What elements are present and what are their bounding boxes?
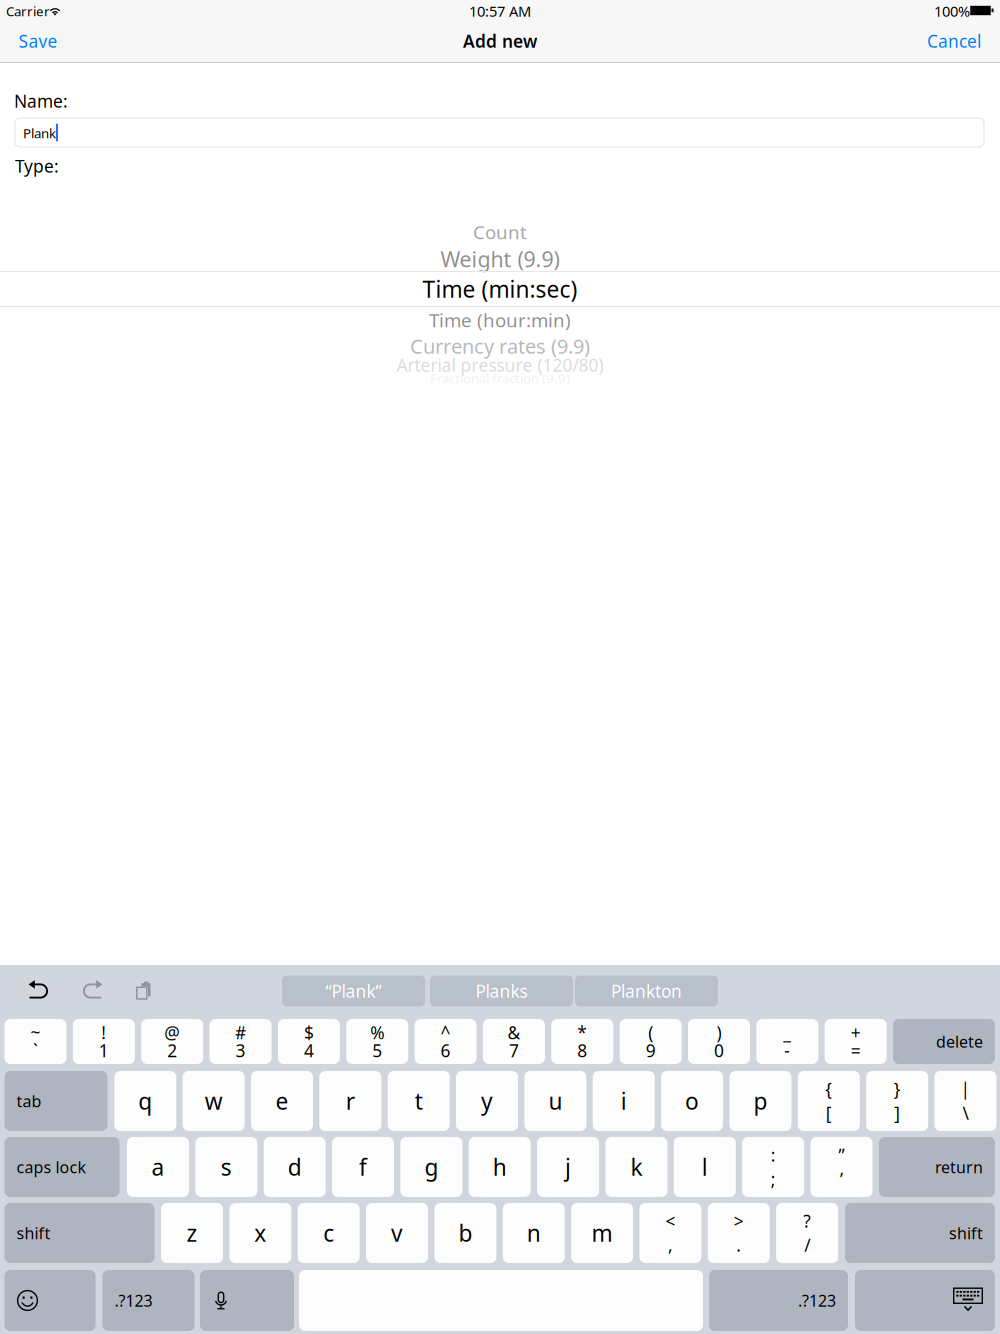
staticText: c	[323, 1218, 334, 1248]
button[interactable]: w	[183, 1071, 245, 1131]
button[interactable]: Hide keyboard	[855, 1270, 995, 1331]
staticText: Name:	[14, 89, 68, 112]
button[interactable]: o	[661, 1071, 723, 1131]
button[interactable]: “Plank”	[282, 975, 425, 1006]
button[interactable]: Dictate	[200, 1270, 294, 1331]
staticText: shift	[949, 1222, 983, 1244]
button[interactable]: return	[879, 1137, 995, 1197]
button[interactable]: 9	[620, 1019, 682, 1064]
button[interactable]: =	[825, 1019, 887, 1064]
button[interactable]: `	[4, 1019, 66, 1064]
button[interactable]: z	[161, 1203, 223, 1263]
staticText: {	[825, 1077, 832, 1100]
button[interactable]: k	[605, 1137, 667, 1197]
staticText: ;	[771, 1167, 776, 1190]
button[interactable]: 0	[688, 1019, 750, 1064]
button[interactable]: c	[298, 1203, 360, 1263]
staticText: )	[716, 1021, 721, 1044]
button[interactable]: x	[229, 1203, 291, 1263]
button[interactable]: -	[756, 1019, 818, 1064]
button[interactable]: shift	[845, 1203, 995, 1263]
button[interactable]: Save	[7, 20, 69, 62]
staticText: Planks	[475, 979, 527, 1002]
staticText: ”	[838, 1143, 844, 1166]
staticText: \	[962, 1101, 968, 1124]
staticText: 5	[372, 1039, 382, 1062]
button[interactable]: /	[776, 1203, 838, 1263]
staticText: 7	[509, 1039, 519, 1062]
button[interactable]: Plankton	[575, 975, 718, 1006]
staticText: x	[254, 1218, 266, 1248]
button[interactable]: h	[469, 1137, 531, 1197]
button[interactable]: 8	[551, 1019, 613, 1064]
staticText: +	[851, 1021, 861, 1044]
staticText: Fractional fraction (9.9)	[430, 369, 570, 387]
staticText: delete	[936, 1031, 983, 1052]
button[interactable]: caps lock	[4, 1137, 119, 1197]
staticText: Save	[18, 29, 57, 52]
button[interactable]: shift	[4, 1203, 154, 1263]
button[interactable]: Cancel	[916, 20, 992, 62]
staticText: k	[630, 1152, 642, 1182]
button[interactable]: Planks	[430, 975, 573, 1006]
button[interactable]: tab	[4, 1071, 107, 1131]
button[interactable]: Undo	[18, 971, 62, 1011]
button[interactable]: ’	[810, 1137, 872, 1197]
button[interactable]: r	[319, 1071, 381, 1131]
button[interactable]: Emoji	[4, 1270, 95, 1331]
button[interactable]: n	[503, 1203, 565, 1263]
staticText: g	[424, 1152, 438, 1182]
button[interactable]: 1	[73, 1019, 135, 1064]
button[interactable]: .	[708, 1203, 770, 1263]
staticText: e	[275, 1086, 288, 1116]
button[interactable]: .?123	[709, 1270, 848, 1331]
button[interactable]: ,	[639, 1203, 701, 1263]
button[interactable]: 6	[415, 1019, 477, 1064]
button[interactable]: s	[195, 1137, 257, 1197]
staticText: j	[565, 1152, 571, 1182]
button[interactable]: i	[593, 1071, 655, 1131]
button[interactable]: j	[537, 1137, 599, 1197]
button[interactable]: b	[434, 1203, 496, 1263]
button[interactable]: 4	[278, 1019, 340, 1064]
staticText: q	[138, 1086, 152, 1116]
button[interactable]: f	[332, 1137, 394, 1197]
staticText: -	[784, 1039, 790, 1062]
staticText: !	[101, 1021, 106, 1044]
button[interactable]: a	[127, 1137, 189, 1197]
button[interactable]: ]	[866, 1071, 928, 1131]
button[interactable]: q	[114, 1071, 176, 1131]
button[interactable]: Redo	[69, 971, 113, 1011]
button[interactable]: e	[251, 1071, 313, 1131]
staticText: `	[33, 1039, 38, 1062]
staticText: z	[186, 1218, 197, 1248]
staticText: &	[507, 1021, 520, 1044]
staticText: 10:57 AM	[469, 1, 531, 21]
staticText: *	[577, 1021, 587, 1044]
button[interactable]: .?123	[102, 1270, 194, 1331]
button[interactable]: m	[571, 1203, 633, 1263]
staticText: (	[648, 1021, 653, 1044]
button[interactable]: y	[456, 1071, 518, 1131]
button[interactable]: Paste	[122, 971, 166, 1011]
button[interactable]: [	[798, 1071, 860, 1131]
button[interactable]: v	[366, 1203, 428, 1263]
button[interactable]: delete	[893, 1019, 995, 1064]
button[interactable]: t	[388, 1071, 450, 1131]
button[interactable]: g	[400, 1137, 462, 1197]
button[interactable]: l	[674, 1137, 736, 1197]
button[interactable]: ;	[742, 1137, 804, 1197]
button[interactable]: 3	[209, 1019, 271, 1064]
button[interactable]: 2	[141, 1019, 203, 1064]
staticText: Time (hour:min)	[429, 308, 571, 332]
staticText: Count	[473, 220, 527, 244]
button[interactable]: p	[729, 1071, 791, 1131]
button[interactable]: d	[264, 1137, 326, 1197]
button[interactable]: \	[934, 1071, 996, 1131]
button[interactable]: u	[524, 1071, 586, 1131]
staticText: t	[415, 1086, 423, 1116]
button[interactable]: 5	[346, 1019, 408, 1064]
staticText: “Plank”	[325, 979, 381, 1002]
button[interactable]: 7	[483, 1019, 545, 1064]
